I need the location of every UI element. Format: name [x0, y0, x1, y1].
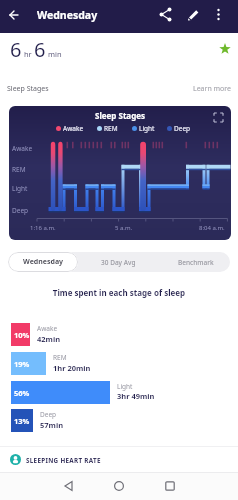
staticText: 10% — [14, 330, 30, 340]
button[interactable] — [4, 5, 26, 27]
staticText: REM — [53, 353, 67, 362]
staticText: Sleep Stages — [9, 110, 231, 121]
button[interactable] — [156, 5, 175, 24]
button[interactable]: 19% — [11, 352, 46, 375]
button[interactable]: Sleep Stages — [9, 106, 231, 240]
staticText: Awake — [37, 324, 58, 333]
button[interactable]: 10% — [11, 323, 30, 346]
staticText: 1hr 20min — [53, 363, 91, 373]
staticText: Time spent in each stage of sleep — [0, 287, 238, 298]
button[interactable] — [211, 5, 228, 22]
button[interactable]: Benchmark — [160, 252, 230, 272]
button[interactable] — [109, 476, 129, 496]
button[interactable] — [160, 476, 180, 496]
staticText: REM — [12, 165, 26, 174]
staticText: Light — [117, 382, 133, 391]
staticText: 1:16 a.m. — [30, 224, 56, 232]
staticText: Deep — [40, 410, 57, 419]
staticText: 19% — [14, 359, 30, 369]
staticText: 57min — [40, 420, 64, 430]
staticText: Sleep Stages — [7, 84, 49, 94]
button[interactable] — [59, 476, 79, 496]
button[interactable]: Wednesday — [8, 252, 78, 272]
staticText: 5 a.m. — [115, 224, 133, 232]
staticText: Deep — [174, 124, 191, 133]
staticText: Light — [12, 184, 28, 193]
button[interactable]: Learn more — [193, 84, 232, 94]
staticText: 6 — [10, 36, 22, 63]
staticText: Awake — [63, 124, 84, 133]
staticText: Wednesday — [23, 257, 64, 267]
staticText: 30 Day Avg — [101, 258, 136, 267]
staticText: 3hr 49min — [117, 391, 155, 401]
button[interactable]: 56% — [11, 381, 110, 404]
staticText: 13% — [14, 416, 30, 426]
button[interactable] — [184, 5, 203, 24]
staticText: min — [46, 49, 62, 59]
staticText: Benchmark — [178, 258, 214, 267]
button[interactable]: 13% — [11, 409, 33, 432]
button[interactable]: SLEEPING HEART RATE — [0, 447, 238, 472]
staticText: REM — [104, 124, 118, 133]
staticText: 42min — [37, 334, 61, 344]
staticText: Light — [139, 124, 155, 133]
staticText: 6 — [34, 36, 46, 63]
staticText: Wednesday — [37, 8, 98, 22]
button[interactable]: 30 Day Avg — [83, 252, 154, 272]
staticText: Awake — [12, 144, 33, 153]
staticText: Deep — [12, 206, 29, 215]
staticText: 8:04 a.m. — [199, 224, 225, 232]
staticText: 56% — [14, 388, 30, 398]
staticText: SLEEPING HEART RATE — [26, 456, 101, 465]
staticText: hr — [22, 49, 34, 59]
